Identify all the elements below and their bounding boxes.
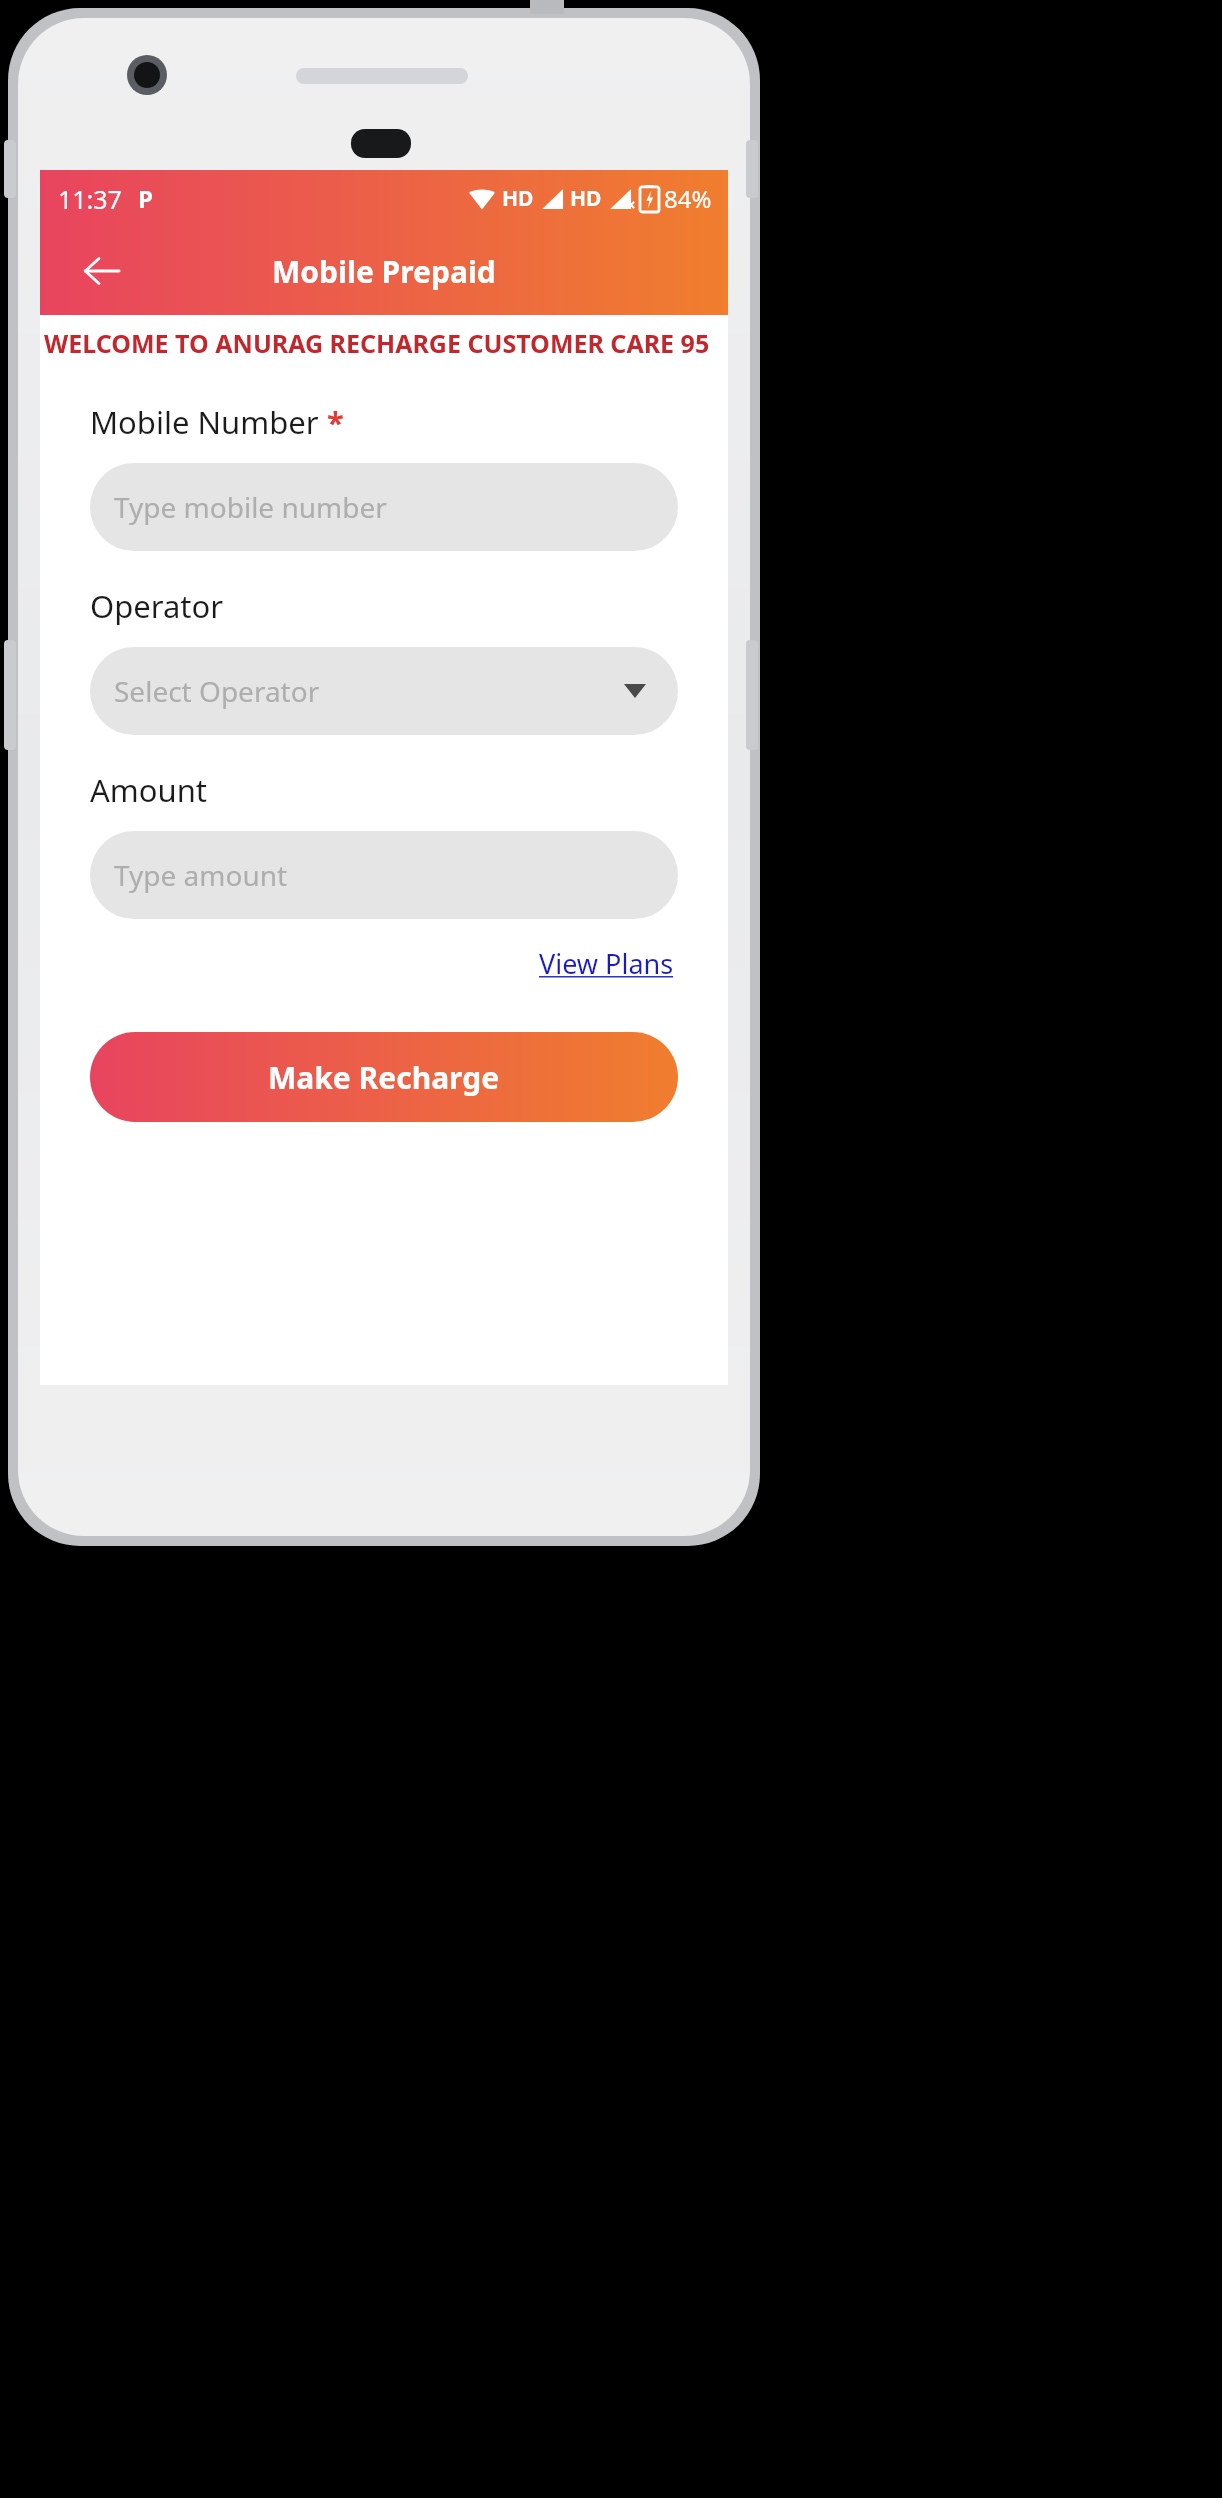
staticText: Operator — [90, 585, 224, 627]
staticText: Mobile Prepaid — [272, 251, 496, 292]
staticText: HD — [570, 184, 602, 213]
staticText: WELCOME TO ANURAG RECHARGE CUSTOMER CARE… — [44, 326, 710, 360]
button[interactable]: Back — [76, 245, 128, 297]
staticText: HD — [502, 184, 534, 213]
staticText: Amount — [90, 769, 208, 811]
staticText: Mobile Number — [90, 401, 319, 443]
staticText: Type mobile number — [114, 488, 387, 526]
staticText: 84% — [664, 182, 712, 215]
button[interactable]: Select Operator — [90, 647, 678, 735]
staticText: P — [138, 182, 153, 215]
staticText: * — [327, 401, 344, 443]
button[interactable]: Type amount — [90, 831, 678, 919]
staticText: View Plans — [539, 945, 674, 982]
button[interactable]: Type mobile number — [90, 463, 678, 551]
button[interactable]: View Plans — [535, 939, 678, 988]
staticText: Type amount — [114, 856, 288, 894]
button[interactable]: Make Recharge — [90, 1032, 678, 1122]
staticText: 11:37 — [58, 182, 122, 216]
staticText: Select Operator — [114, 672, 320, 710]
staticText: Make Recharge — [268, 1057, 500, 1098]
